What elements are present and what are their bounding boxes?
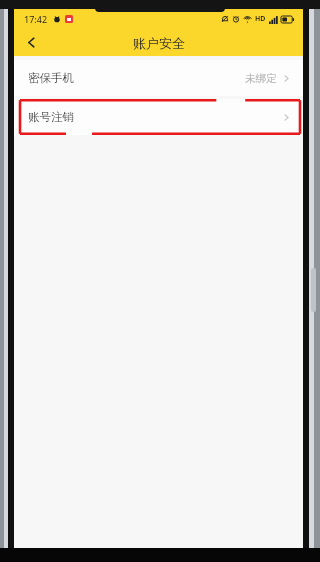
staticText: 账号注销 [28,110,74,124]
staticText: 账户安全 [133,35,185,51]
button[interactable]: 账号注销 [14,99,303,135]
button[interactable]: 密保手机 [14,60,303,96]
staticText: 17:42 [24,13,48,25]
staticText: 密保手机 [28,71,74,85]
button[interactable]: Back [14,29,48,56]
staticText: 未绑定 [245,72,277,85]
staticText: HD [255,14,266,24]
